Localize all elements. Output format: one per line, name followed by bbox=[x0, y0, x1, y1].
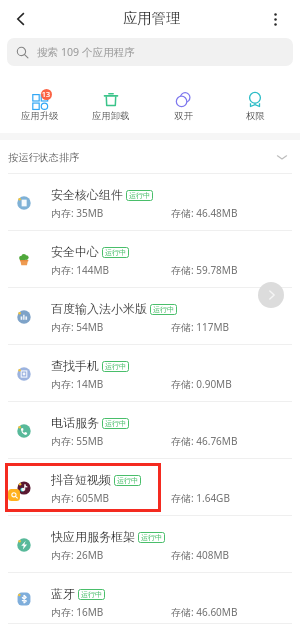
staticText: 存储: 46.60MB bbox=[171, 605, 238, 619]
button[interactable]: Scroll bbox=[258, 282, 284, 308]
button[interactable]: 按运行状态排序 bbox=[0, 140, 300, 174]
button[interactable]: 权限 bbox=[219, 66, 291, 133]
staticText: 百度输入法小米版 bbox=[51, 301, 147, 316]
staticText: 存储: 59.78MB bbox=[171, 263, 238, 277]
staticText: 内存: 35MB bbox=[51, 206, 104, 220]
staticText: 运行中 bbox=[105, 419, 126, 428]
button[interactable]: 蓝牙 bbox=[0, 573, 300, 624]
staticText: 安全核心组件 bbox=[51, 187, 123, 202]
staticText: 13 bbox=[42, 90, 51, 100]
staticText: 存储: 46.48MB bbox=[171, 206, 238, 220]
button[interactable]: 查找手机 bbox=[0, 345, 300, 402]
staticText: 应用卸载 bbox=[92, 110, 130, 122]
staticText: 快应用服务框架 bbox=[51, 529, 135, 544]
button[interactable]: 安全核心组件 bbox=[0, 174, 300, 231]
staticText: 蓝牙 bbox=[51, 586, 75, 601]
staticText: 电话服务 bbox=[51, 415, 99, 430]
staticText: 运行中 bbox=[153, 305, 174, 314]
staticText: 安全中心 bbox=[51, 244, 99, 259]
button[interactable]: 抖音短视频 bbox=[0, 459, 300, 516]
staticText: 运行中 bbox=[105, 362, 126, 371]
staticText: 权限 bbox=[246, 110, 265, 122]
staticText: 存储: 408MB bbox=[171, 548, 230, 562]
button[interactable]: More options bbox=[263, 7, 287, 31]
staticText: 抖音短视频 bbox=[51, 472, 111, 487]
staticText: 应用管理 bbox=[123, 9, 181, 27]
button[interactable]: Back bbox=[7, 5, 35, 33]
button[interactable]: 快应用服务框架 bbox=[0, 516, 300, 573]
staticText: 搜索 109 个应用程序 bbox=[37, 45, 135, 59]
staticText: 运行中 bbox=[129, 191, 150, 200]
staticText: 存储: 0.90MB bbox=[171, 377, 232, 391]
staticText: 内存: 605MB bbox=[51, 491, 110, 505]
staticText: 内存: 26MB bbox=[51, 548, 104, 562]
staticText: 运行中 bbox=[117, 476, 138, 485]
button[interactable]: 应用卸载 bbox=[75, 66, 147, 133]
button[interactable]: 搜索 109 个应用程序 bbox=[7, 38, 293, 66]
button[interactable]: 13 bbox=[4, 66, 75, 133]
button[interactable]: 电话服务 bbox=[0, 402, 300, 459]
staticText: 内存: 144MB bbox=[51, 263, 110, 277]
staticText: 内存: 55MB bbox=[51, 434, 104, 448]
staticText: 存储: 1.64GB bbox=[171, 491, 230, 505]
staticText: 内存: 54MB bbox=[51, 320, 104, 334]
staticText: 运行中 bbox=[105, 248, 126, 257]
button[interactable]: 双开 bbox=[147, 66, 219, 133]
staticText: 内存: 14MB bbox=[51, 377, 104, 391]
staticText: 应用升级 bbox=[21, 110, 59, 122]
button[interactable]: 百度输入法小米版 bbox=[0, 288, 300, 345]
staticText: 按运行状态排序 bbox=[8, 151, 80, 164]
staticText: 双开 bbox=[174, 110, 193, 122]
staticText: 存储: 117MB bbox=[171, 320, 230, 334]
button[interactable]: 安全中心 bbox=[0, 231, 300, 288]
staticText: 运行中 bbox=[141, 533, 162, 542]
staticText: 存储: 46.76MB bbox=[171, 434, 238, 448]
staticText: 查找手机 bbox=[51, 358, 99, 373]
staticText: 内存: 16MB bbox=[51, 605, 104, 619]
staticText: 运行中 bbox=[81, 590, 102, 599]
